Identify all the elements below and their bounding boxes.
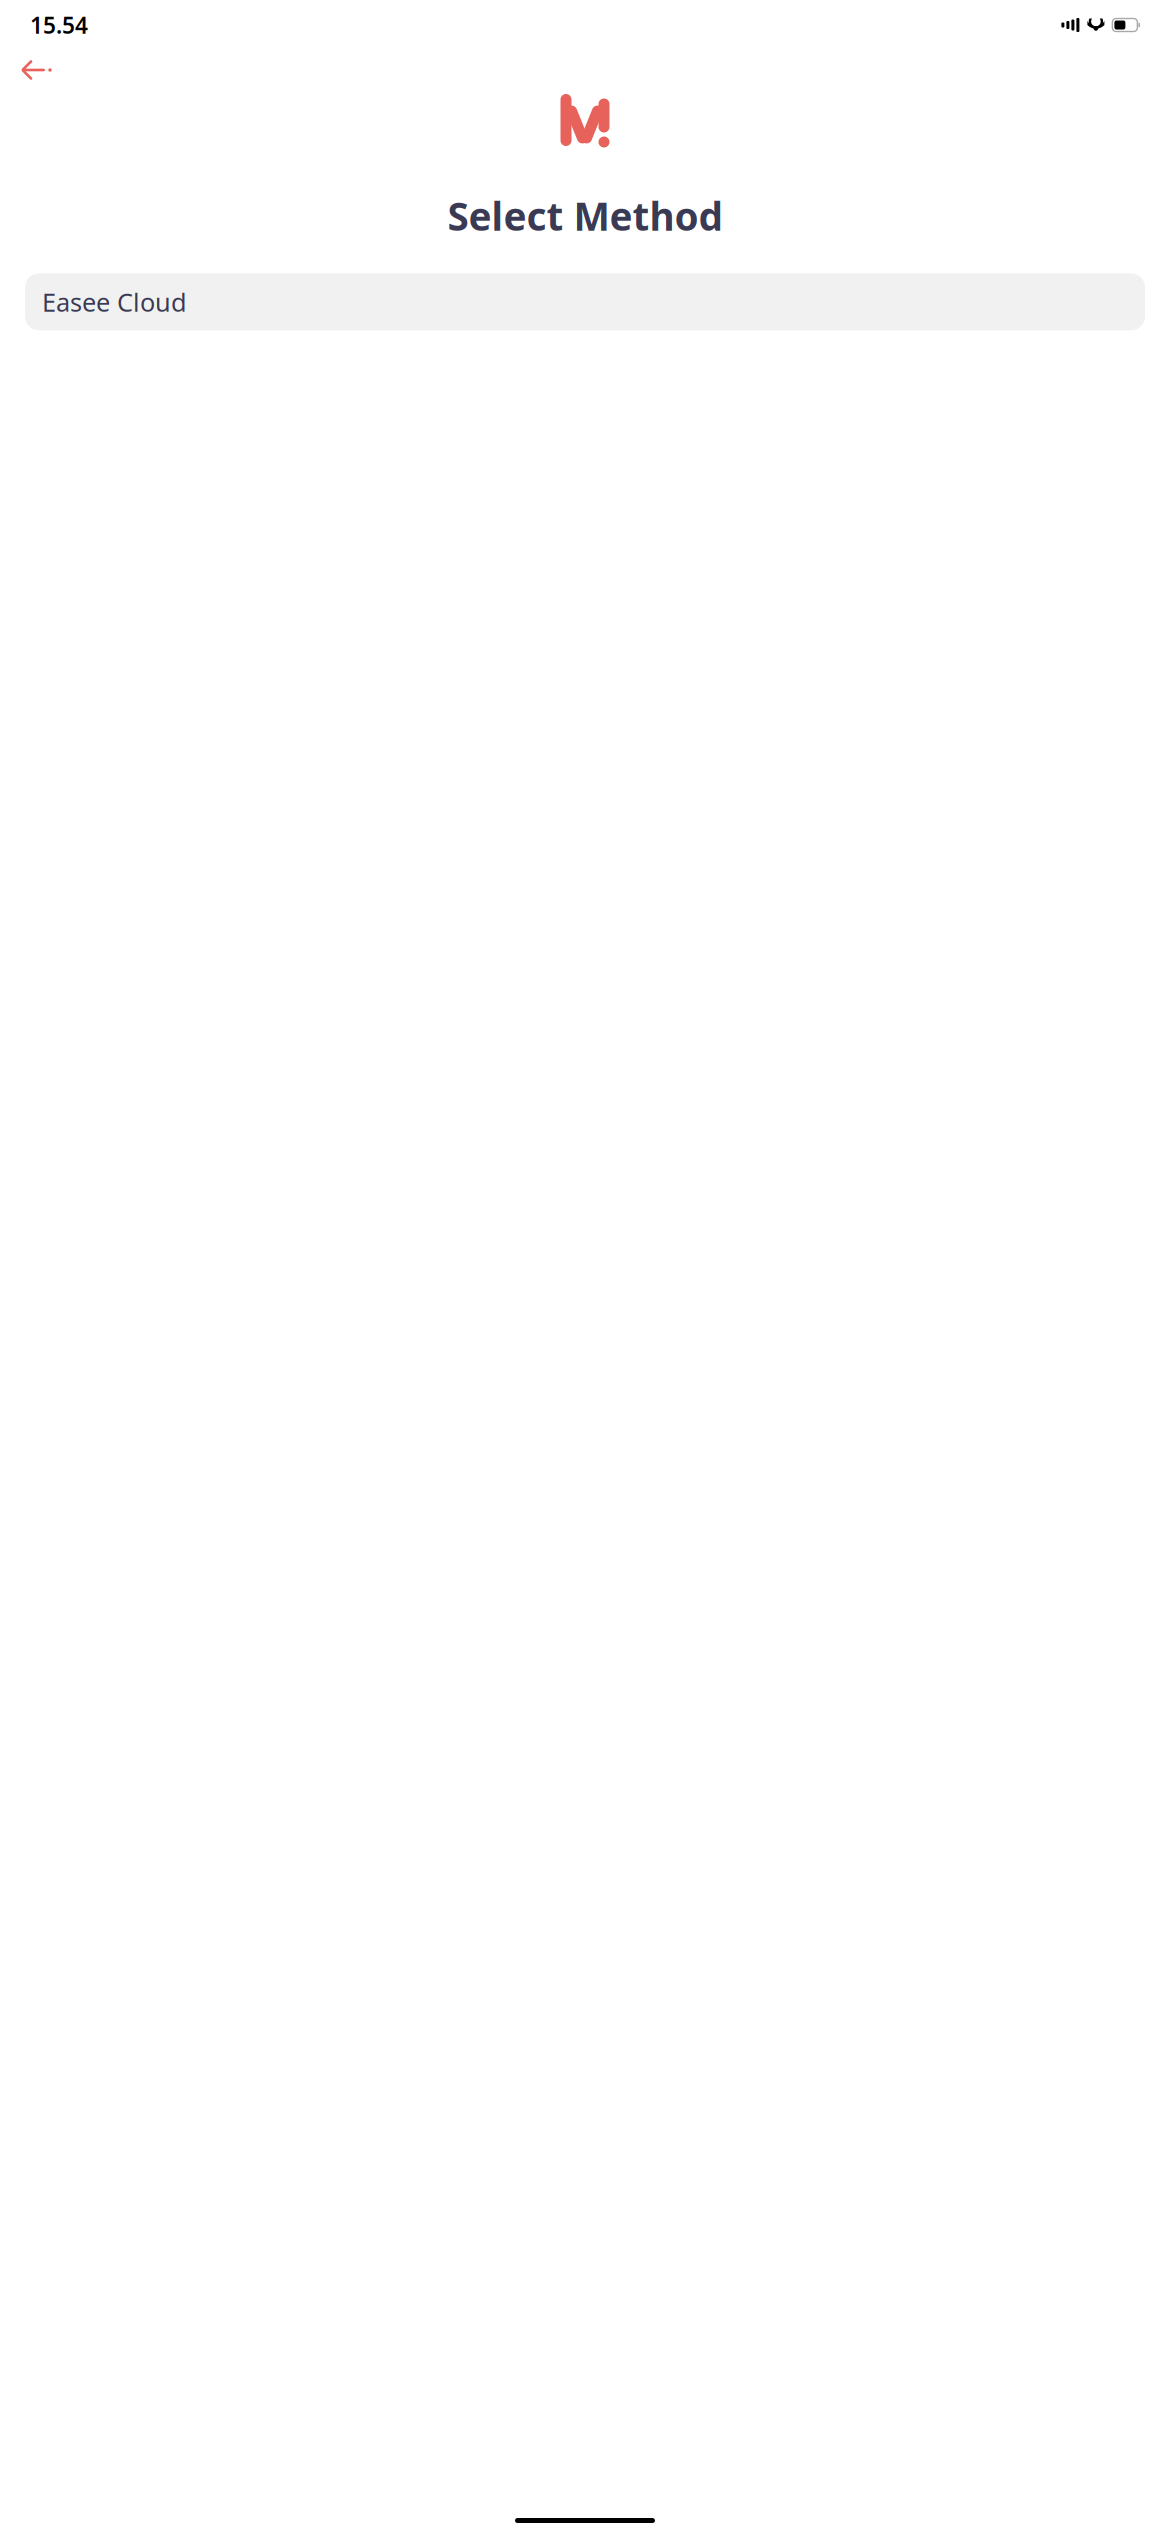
staticText: Select Method <box>447 190 722 241</box>
staticText: 15.54 <box>30 10 88 40</box>
staticText: Easee Cloud <box>42 285 187 319</box>
button[interactable]: Back <box>16 50 60 90</box>
button[interactable]: Easee Cloud <box>25 273 1145 330</box>
